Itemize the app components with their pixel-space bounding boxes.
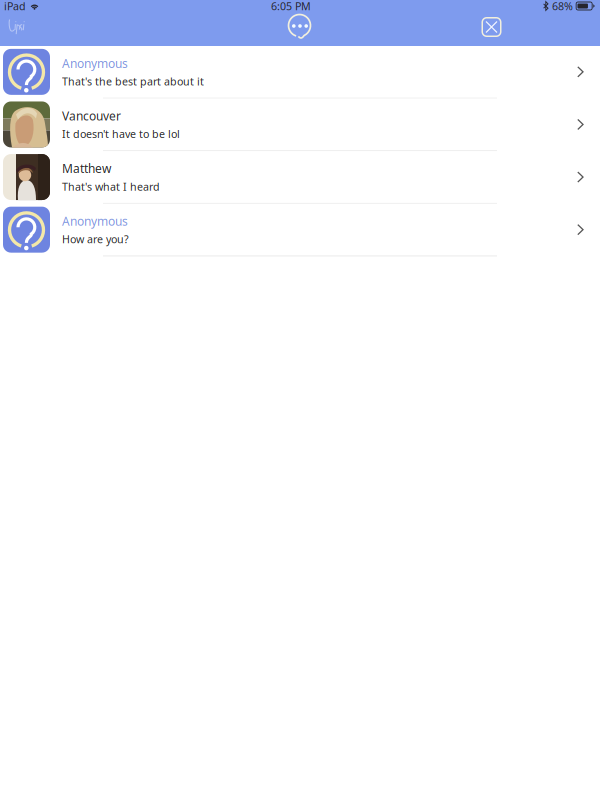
button[interactable]: Lipsi [0,12,34,42]
button[interactable]: Anonymous [0,46,600,99]
staticText: Vancouver [62,108,121,124]
staticText: Anonymous [62,55,128,71]
staticText: Anonymous [62,213,128,229]
staticText: Matthew [62,160,111,176]
button[interactable]: Matthew [0,151,600,204]
button[interactable]: New message [286,12,314,41]
staticText: It doesn't have to be lol [62,127,180,141]
staticText: That's the best part about it [62,74,204,88]
staticText: That's what I heard [62,179,160,194]
button[interactable]: Anonymous [0,204,600,256]
button[interactable]: Close [481,16,502,37]
staticText: iPad [4,0,26,13]
staticText: 6:05 PM [271,0,311,13]
staticText: How are you? [62,232,129,246]
staticText: 68% [552,0,573,13]
button[interactable]: Vancouver [0,99,600,151]
